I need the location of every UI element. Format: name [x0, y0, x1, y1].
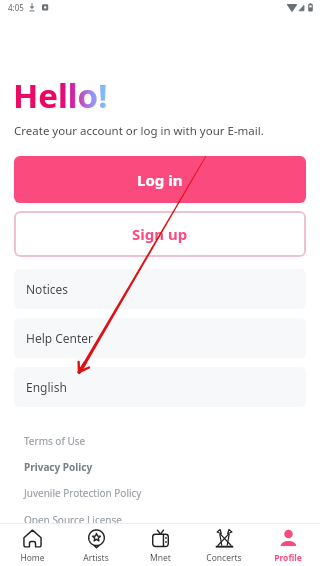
button[interactable]: Concerts — [192, 524, 256, 566]
staticText: Hello! — [13, 73, 108, 118]
button[interactable]: Mnet — [128, 524, 192, 566]
button[interactable]: Juvenile Protection Policy — [0, 482, 320, 504]
staticText: Privacy Policy — [24, 460, 93, 474]
staticText: Create your account or log in with your … — [14, 123, 264, 139]
button[interactable]: Profile — [256, 524, 320, 566]
button[interactable]: Log in — [14, 156, 306, 203]
staticText: Sign up — [132, 224, 188, 244]
button[interactable]: Home — [0, 524, 64, 566]
staticText: Home — [20, 552, 45, 564]
staticText: Artists — [83, 552, 109, 564]
staticText: Log in — [137, 170, 183, 190]
button[interactable]: Artists — [64, 524, 128, 566]
staticText: Concerts — [206, 552, 242, 564]
staticText: Profile — [274, 552, 302, 564]
button[interactable]: English — [14, 367, 306, 407]
button[interactable]: Open Source License — [0, 509, 320, 531]
staticText: 4:05 — [8, 2, 24, 13]
staticText: Terms of Use — [24, 434, 86, 448]
button[interactable]: Terms of Use — [0, 430, 320, 452]
staticText: Mnet — [150, 552, 171, 564]
staticText: English — [26, 379, 67, 395]
button[interactable]: Help Center — [14, 318, 306, 358]
staticText: Juvenile Protection Policy — [24, 486, 142, 500]
staticText: Help Center — [26, 330, 94, 346]
staticText: Notices — [26, 281, 69, 297]
button[interactable]: Sign up — [14, 211, 306, 257]
staticText: Open Source License — [24, 513, 122, 527]
button[interactable]: Privacy Policy — [0, 456, 320, 478]
button[interactable]: Notices — [14, 269, 306, 309]
